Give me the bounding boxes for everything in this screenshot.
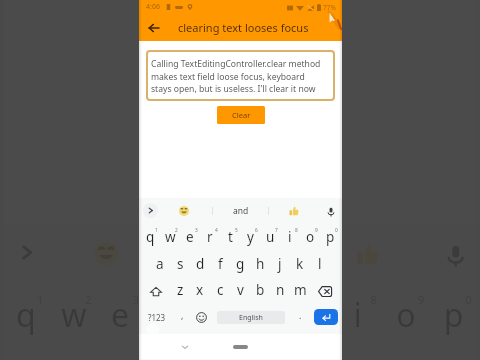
button[interactable]: g: [230, 251, 250, 278]
staticText: 4: [215, 227, 218, 234]
button[interactable]: h: [250, 251, 270, 278]
button[interactable]: i: [280, 224, 300, 251]
staticText: p: [444, 294, 465, 337]
button[interactable]: i: [334, 285, 382, 349]
button[interactable]: b: [250, 278, 270, 304]
staticText: u: [266, 228, 275, 246]
button[interactable]: l: [310, 251, 330, 278]
button[interactable]: Smiling emoji suggestion: [90, 237, 123, 270]
button[interactable]: p: [430, 285, 477, 349]
button[interactable]: o: [300, 224, 320, 251]
staticText: i: [288, 228, 292, 246]
button[interactable]: m: [290, 278, 310, 304]
staticText: r: [207, 228, 213, 246]
staticText: t: [211, 294, 223, 337]
button[interactable]: a: [150, 251, 170, 278]
staticText: .: [299, 309, 302, 321]
staticText: a: [156, 255, 164, 273]
staticText: i: [353, 294, 363, 337]
button[interactable]: e: [180, 224, 200, 251]
button[interactable]: q: [4, 285, 49, 349]
button[interactable]: u: [260, 224, 280, 251]
button[interactable]: t: [192, 285, 239, 349]
button[interactable]: w: [49, 285, 97, 349]
staticText: u: [301, 294, 323, 337]
staticText: 9: [315, 227, 318, 234]
button[interactable]: Clear: [217, 106, 265, 124]
staticText: j: [278, 255, 282, 273]
button[interactable]: d: [121, 349, 168, 360]
staticText: 1: [155, 227, 158, 234]
button[interactable]: ?123: [144, 304, 169, 330]
button[interactable]: Back: [143, 17, 165, 39]
button[interactable]: .: [294, 304, 306, 330]
staticText: g: [230, 358, 251, 360]
button[interactable]: x: [190, 278, 210, 304]
button[interactable]: d: [190, 251, 210, 278]
button[interactable]: Expand toolbar: [9, 235, 44, 270]
button[interactable]: c: [210, 278, 230, 304]
button[interactable]: z: [170, 278, 190, 304]
button[interactable]: n: [270, 278, 290, 304]
button[interactable]: p: [320, 224, 340, 251]
staticText: m: [294, 281, 307, 299]
button[interactable]: Clear: [185, 4, 299, 47]
button[interactable]: English: [217, 311, 285, 324]
button[interactable]: Voice input: [323, 204, 338, 219]
button[interactable]: and: [228, 205, 253, 217]
staticText: Calling TextEditingController.clear meth…: [151, 58, 321, 94]
staticText: h: [277, 358, 299, 360]
button[interactable]: Emoji keyboard: [194, 310, 209, 325]
button[interactable]: Expand toolbar: [143, 203, 158, 218]
button[interactable]: q: [141, 224, 160, 251]
button[interactable]: Enter: [314, 309, 338, 325]
staticText: t: [228, 228, 233, 246]
button[interactable]: j: [311, 349, 358, 360]
button[interactable]: Shift: [141, 278, 170, 304]
staticText: 8: [370, 292, 377, 308]
button[interactable]: w: [160, 224, 180, 251]
button[interactable]: Thumbs up emoji suggestion: [287, 204, 301, 218]
button[interactable]: e: [97, 285, 144, 349]
button[interactable]: k: [290, 251, 310, 278]
button[interactable]: and: [211, 239, 270, 268]
button[interactable]: v: [230, 278, 250, 304]
staticText: y: [256, 294, 273, 337]
staticText: Clear: [232, 110, 251, 120]
staticText: f: [187, 358, 199, 360]
staticText: 3: [132, 292, 139, 308]
staticText: f: [218, 255, 223, 273]
button[interactable]: s: [170, 251, 190, 278]
button[interactable]: r: [144, 285, 192, 349]
button[interactable]: y: [239, 285, 287, 349]
button[interactable]: Hide keyboard: [177, 339, 192, 354]
button[interactable]: j: [270, 251, 290, 278]
button[interactable]: t: [220, 224, 240, 251]
staticText: 5: [235, 227, 238, 234]
staticText: 3: [195, 227, 198, 234]
button[interactable]: y: [240, 224, 260, 251]
button[interactable]: Backspace: [310, 278, 340, 304]
staticText: clearing text looses focus: [178, 20, 309, 35]
button[interactable]: Smiling emoji suggestion: [177, 204, 191, 218]
button[interactable]: Voice input: [437, 237, 472, 273]
staticText: d: [196, 255, 205, 273]
button[interactable]: u: [287, 285, 334, 349]
button[interactable]: r: [200, 224, 220, 251]
button[interactable]: ,: [175, 304, 189, 330]
button[interactable]: Thumbs up emoji suggestion: [351, 237, 384, 270]
button[interactable]: f: [210, 251, 230, 278]
